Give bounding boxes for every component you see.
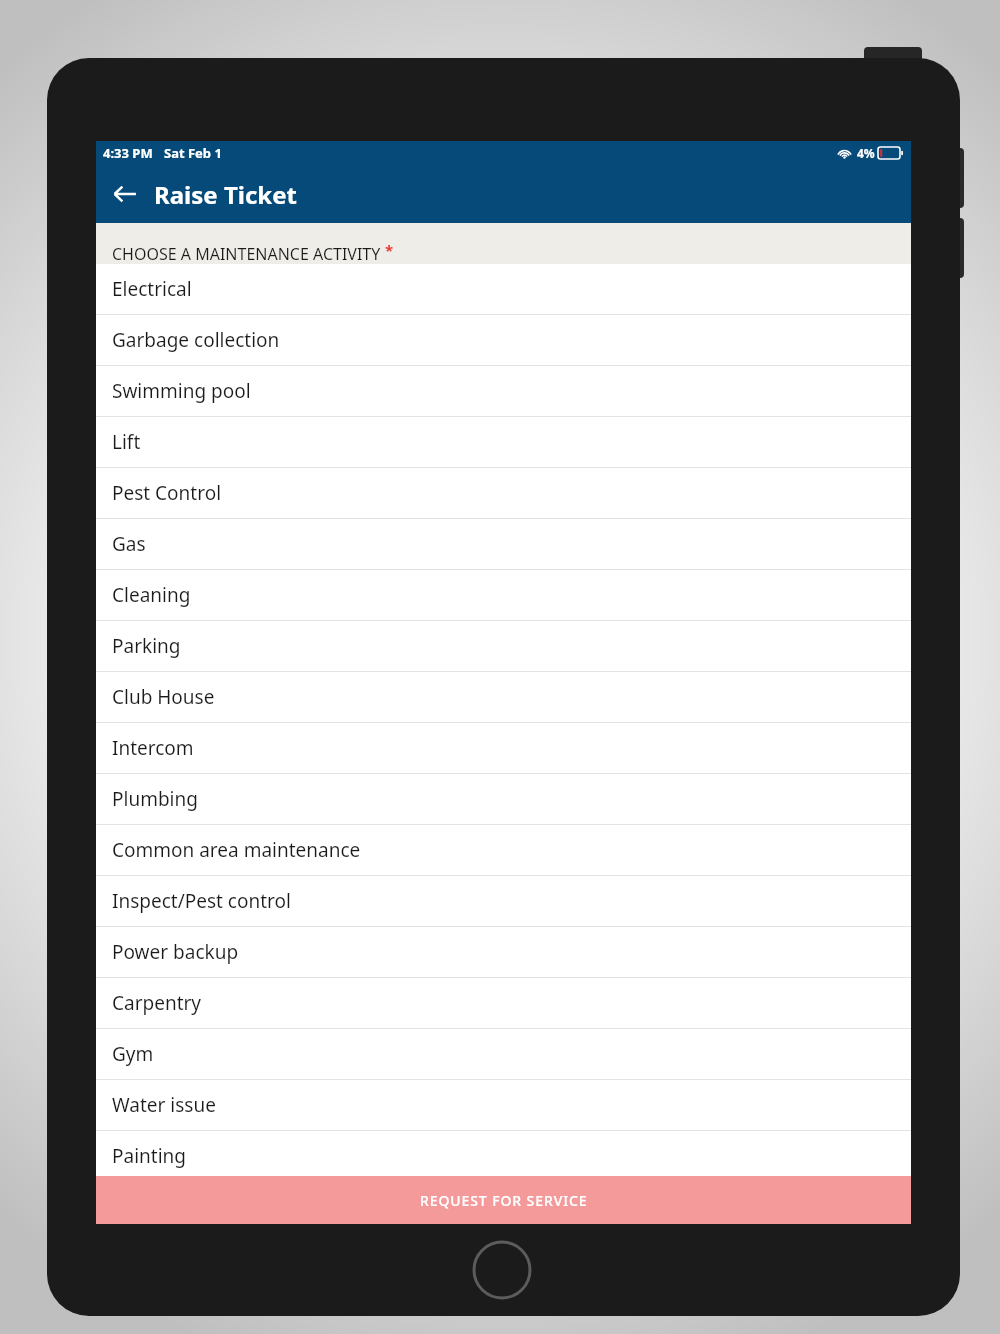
button[interactable]: Common area maintenance	[96, 825, 911, 876]
staticText: Parking	[112, 633, 181, 659]
button[interactable]: Power backup	[96, 927, 911, 978]
button[interactable]: Carpentry	[96, 978, 911, 1029]
button[interactable]: Painting	[96, 1131, 911, 1182]
staticText: Raise Ticket	[154, 178, 297, 211]
staticText: Electrical	[112, 276, 192, 302]
button[interactable]: Gas	[96, 519, 911, 570]
button[interactable]: Lift	[96, 417, 911, 468]
button[interactable]: Parking	[96, 621, 911, 672]
staticText: Power backup	[112, 939, 239, 965]
button[interactable]: Inspect/Pest control	[96, 876, 911, 927]
staticText: Inspect/Pest control	[112, 888, 291, 914]
staticText: Water issue	[112, 1092, 216, 1118]
button[interactable]: Swimming pool	[96, 366, 911, 417]
button[interactable]: REQUEST FOR SERVICE	[96, 1176, 911, 1224]
staticText: 4%	[857, 145, 875, 161]
button[interactable]: Intercom	[96, 723, 911, 774]
staticText: Club House	[112, 684, 215, 710]
staticText: 4:33 PM	[103, 144, 153, 162]
staticText: Pest Control	[112, 480, 222, 506]
staticText: Plumbing	[112, 786, 198, 812]
staticText: Swimming pool	[112, 378, 251, 404]
button[interactable]: Club House	[96, 672, 911, 723]
button[interactable]: Electrical	[96, 264, 911, 315]
staticText: REQUEST FOR SERVICE	[420, 1191, 588, 1210]
button[interactable]: Gym	[96, 1029, 911, 1080]
staticText: Garbage collection	[112, 327, 280, 353]
staticText: Painting	[112, 1143, 186, 1169]
staticText: Intercom	[112, 735, 194, 761]
staticText: Cleaning	[112, 582, 191, 608]
staticText: *	[385, 240, 394, 260]
button[interactable]: Water issue	[96, 1080, 911, 1131]
staticText: Carpentry	[112, 990, 202, 1016]
button[interactable]: Plumbing	[96, 774, 911, 825]
button[interactable]: Cleaning	[96, 570, 911, 621]
staticText: Common area maintenance	[112, 837, 361, 863]
button[interactable]: Back	[102, 171, 148, 217]
staticText: Gym	[112, 1041, 154, 1067]
staticText: Sat Feb 1	[164, 144, 222, 162]
staticText: Lift	[112, 429, 141, 455]
button[interactable]: Pest Control	[96, 468, 911, 519]
staticText: CHOOSE A MAINTENANCE ACTIVITY	[112, 243, 381, 265]
staticText: Gas	[112, 531, 146, 557]
button[interactable]: Garbage collection	[96, 315, 911, 366]
